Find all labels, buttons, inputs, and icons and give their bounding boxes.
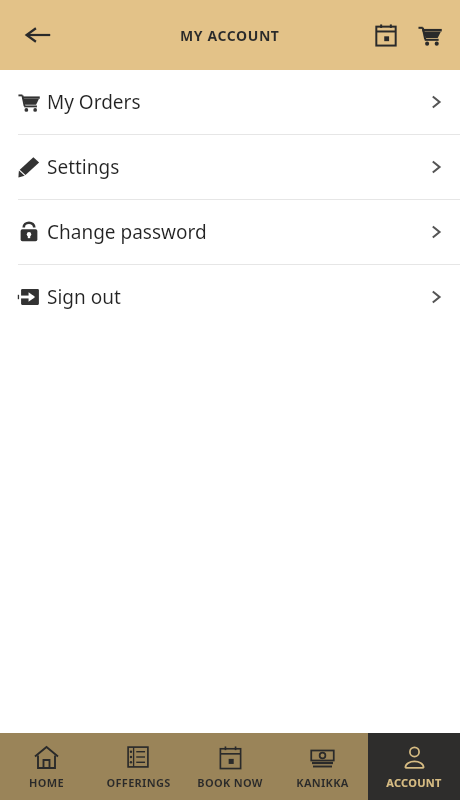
button[interactable]: Calendar: [364, 13, 408, 57]
button[interactable]: KANIKKA: [276, 733, 368, 800]
staticText: Sign out: [47, 284, 121, 310]
staticText: My Orders: [47, 89, 141, 115]
staticText: BOOK NOW: [197, 775, 263, 790]
button[interactable]: My Orders: [0, 70, 460, 134]
staticText: HOME: [29, 775, 64, 790]
staticText: OFFERINGS: [106, 775, 171, 790]
staticText: ACCOUNT: [386, 775, 442, 790]
button[interactable]: HOME: [0, 733, 92, 800]
button[interactable]: ACCOUNT: [368, 733, 460, 800]
button[interactable]: Settings: [0, 135, 460, 199]
staticText: Settings: [47, 154, 120, 180]
button[interactable]: Change password: [0, 200, 460, 264]
staticText: MY ACCOUNT: [180, 26, 280, 45]
staticText: Change password: [47, 219, 207, 245]
button[interactable]: Sign out: [0, 265, 460, 329]
button[interactable]: Back: [14, 11, 62, 59]
button[interactable]: OFFERINGS: [92, 733, 184, 800]
staticText: KANIKKA: [296, 775, 349, 790]
button[interactable]: BOOK NOW: [184, 733, 276, 800]
button[interactable]: Cart: [408, 13, 452, 57]
